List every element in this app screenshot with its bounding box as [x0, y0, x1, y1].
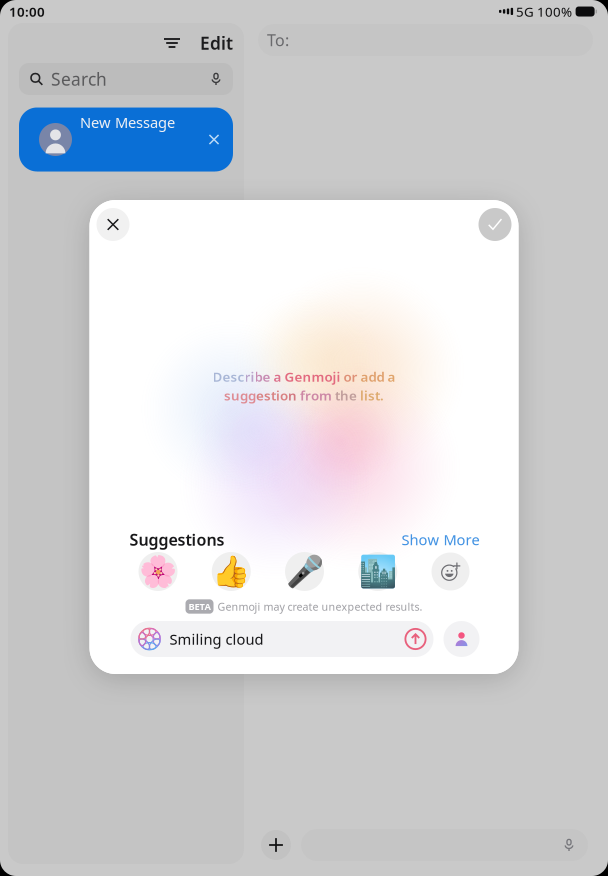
button[interactable]: Filters — [154, 23, 190, 63]
staticText: n — [288, 386, 297, 404]
button[interactable]: 🌸 — [138, 552, 177, 591]
staticText: Show More — [401, 530, 479, 549]
button[interactable]: Show More — [401, 530, 479, 549]
staticText: 🌸 — [139, 554, 177, 589]
staticText: Genmoji may create unexpected results. — [217, 599, 422, 614]
button[interactable]: Search — [19, 63, 233, 95]
staticText: BETA — [188, 600, 210, 613]
staticText: be — [254, 368, 270, 385]
staticText: To: — [267, 29, 289, 51]
button[interactable]: Done — [478, 208, 511, 241]
staticText: 🎤 — [285, 554, 323, 589]
staticText: Search — [51, 67, 107, 90]
staticText: or — [343, 368, 357, 385]
staticText: 5G 100% — [513, 3, 572, 20]
staticText: a — [384, 368, 395, 385]
staticText: Suggestions — [129, 529, 224, 550]
button[interactable]: Add attachment — [261, 830, 291, 860]
staticText: 👍 — [212, 554, 250, 589]
staticText: ri — [244, 368, 254, 385]
staticText: sugg — [224, 386, 256, 404]
button[interactable]: Contacts — [443, 621, 479, 657]
button[interactable]: 🎤 — [285, 552, 324, 591]
button[interactable]: 🏙️ — [358, 552, 397, 591]
staticText: estio — [256, 386, 288, 404]
button[interactable]: 👍 — [212, 552, 251, 591]
staticText: add — [360, 368, 384, 385]
staticText: 10:00 — [9, 3, 45, 20]
staticText: a — [273, 368, 281, 385]
staticText: Edit — [200, 31, 233, 54]
staticText: New Message — [80, 112, 175, 132]
staticText: the — [335, 386, 357, 404]
staticText: Genmoji — [284, 368, 340, 385]
staticText: from — [300, 386, 332, 404]
button[interactable]: More emoji — [431, 552, 469, 590]
button[interactable]: Send — [404, 628, 426, 650]
button[interactable]: Edit — [190, 18, 243, 67]
button[interactable]: New Message — [19, 107, 233, 171]
button[interactable]: Close — [96, 208, 129, 241]
staticText: Desc — [212, 368, 244, 385]
staticText: list. — [360, 386, 384, 404]
staticText: 🏙️ — [359, 554, 397, 589]
staticText: Smiling cloud — [169, 629, 263, 649]
